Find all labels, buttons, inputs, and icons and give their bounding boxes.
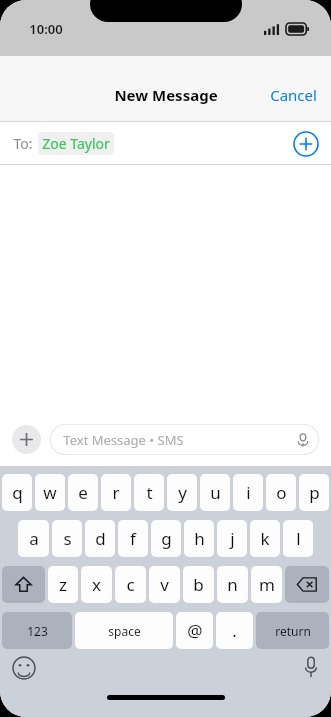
staticText: c bbox=[126, 573, 135, 596]
button[interactable]: i bbox=[233, 474, 263, 511]
button[interactable]: r bbox=[101, 474, 131, 511]
button[interactable]: e bbox=[68, 474, 98, 511]
button[interactable]: n bbox=[217, 566, 248, 603]
button[interactable]: Add contact bbox=[293, 131, 319, 157]
button[interactable]: Dictation bbox=[303, 656, 319, 678]
staticText: space bbox=[108, 623, 141, 639]
staticText: u bbox=[210, 481, 221, 504]
button[interactable]: Zoe Taylor bbox=[38, 132, 114, 155]
staticText: h bbox=[194, 527, 205, 550]
button[interactable]: Delete bbox=[285, 566, 329, 603]
staticText: 10:00 bbox=[29, 20, 63, 38]
button[interactable]: q bbox=[2, 474, 32, 511]
staticText: New Message bbox=[114, 85, 218, 105]
staticText: . bbox=[232, 619, 237, 642]
button[interactable]: d bbox=[85, 520, 115, 557]
button[interactable]: m bbox=[251, 566, 282, 603]
button[interactable]: o bbox=[266, 474, 296, 511]
staticText: l bbox=[296, 527, 301, 550]
button[interactable]: u bbox=[200, 474, 230, 511]
staticText: d bbox=[95, 527, 106, 550]
staticText: a bbox=[29, 527, 39, 550]
staticText: Text Message • SMS bbox=[63, 431, 184, 449]
staticText: return bbox=[275, 623, 311, 639]
staticText: Cancel bbox=[270, 85, 317, 105]
button[interactable]: p bbox=[299, 474, 329, 511]
button[interactable]: x bbox=[81, 566, 112, 603]
staticText: j bbox=[230, 527, 235, 550]
button[interactable]: Emoji keyboard bbox=[12, 656, 36, 680]
staticText: i bbox=[246, 481, 251, 504]
button[interactable]: space bbox=[75, 612, 173, 649]
staticText: b bbox=[193, 573, 204, 596]
button[interactable]: Text Message • SMS bbox=[50, 424, 319, 455]
staticText: s bbox=[63, 527, 72, 550]
button[interactable]: a bbox=[18, 520, 49, 557]
button[interactable]: c bbox=[115, 566, 146, 603]
staticText: w bbox=[43, 481, 57, 504]
button[interactable]: . bbox=[216, 612, 253, 649]
staticText: m bbox=[259, 573, 275, 596]
staticText: 123 bbox=[27, 623, 48, 639]
staticText: g bbox=[161, 527, 172, 550]
button[interactable]: k bbox=[250, 520, 280, 557]
button[interactable]: s bbox=[52, 520, 82, 557]
staticText: n bbox=[227, 573, 238, 596]
staticText: To: bbox=[13, 134, 33, 153]
staticText: t bbox=[146, 481, 153, 504]
button[interactable]: Add attachment bbox=[12, 425, 41, 454]
button[interactable]: f bbox=[118, 520, 148, 557]
button[interactable]: return bbox=[256, 612, 329, 649]
button[interactable]: Cancel bbox=[256, 77, 331, 113]
staticText: v bbox=[160, 573, 169, 596]
button[interactable]: v bbox=[149, 566, 180, 603]
staticText: o bbox=[276, 481, 287, 504]
staticText: x bbox=[92, 573, 101, 596]
staticText: r bbox=[112, 481, 120, 504]
staticText: y bbox=[178, 481, 187, 504]
button[interactable]: y bbox=[167, 474, 197, 511]
button[interactable]: Shift bbox=[2, 566, 45, 603]
button[interactable]: 123 bbox=[2, 612, 72, 649]
button[interactable]: h bbox=[184, 520, 214, 557]
button[interactable]: w bbox=[35, 474, 65, 511]
button[interactable]: z bbox=[48, 566, 78, 603]
staticText: Zoe Taylor bbox=[42, 134, 110, 153]
button[interactable]: b bbox=[183, 566, 214, 603]
button[interactable]: t bbox=[134, 474, 164, 511]
other: Audio message bbox=[296, 433, 310, 447]
staticText: q bbox=[12, 481, 23, 504]
staticText: k bbox=[260, 527, 270, 550]
staticText: e bbox=[78, 481, 88, 504]
staticText: @ bbox=[187, 619, 203, 642]
staticText: z bbox=[59, 573, 67, 596]
staticText: p bbox=[309, 481, 320, 504]
button[interactable]: g bbox=[151, 520, 181, 557]
button[interactable]: l bbox=[283, 520, 313, 557]
button[interactable]: @ bbox=[176, 612, 213, 649]
button[interactable]: j bbox=[217, 520, 247, 557]
staticText: f bbox=[130, 527, 136, 550]
